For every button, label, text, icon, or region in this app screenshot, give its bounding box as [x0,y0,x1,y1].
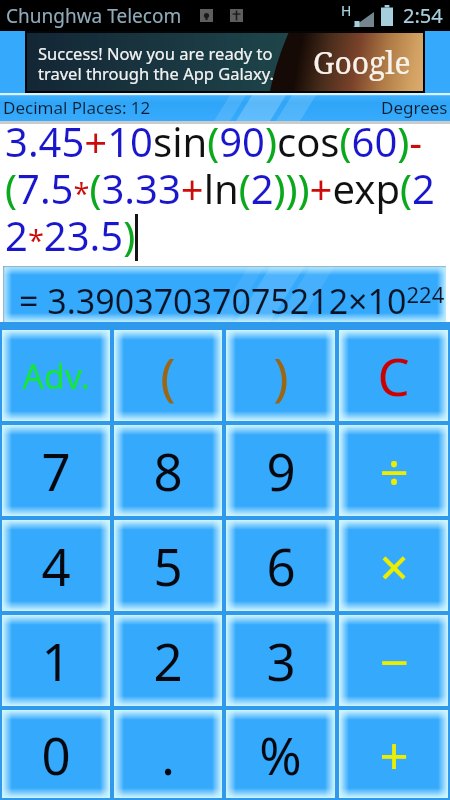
staticText: C [377,341,410,410]
button[interactable]: Adv. [2,330,110,421]
button[interactable]: 1 [2,615,110,706]
staticText: 6 [266,531,296,600]
staticText: Success! Now you are ready to [38,42,273,64]
button[interactable]: 9 [226,425,335,516]
staticText: ÷ [379,436,409,505]
button[interactable]: × [339,520,448,611]
staticText: 3.45+10sin(90)cos(60)- (7.5*(3.33+ln(2))… [5,114,435,263]
staticText: 9 [266,436,296,505]
staticText: 0 [41,720,71,789]
button[interactable]: 2 [114,615,222,706]
staticText: 7 [41,436,71,505]
staticText: ( [160,341,176,410]
staticText: 8 [153,436,183,505]
staticText: H [341,1,352,20]
button[interactable]: 5 [114,520,222,611]
staticText: Adv. [22,353,90,399]
button[interactable]: 6 [226,520,335,611]
button[interactable]: 3 [226,615,335,706]
staticText: + [379,720,409,789]
button[interactable]: − [339,615,448,706]
staticText: Google [313,42,411,83]
button[interactable]: . [114,710,222,798]
staticText: × [379,531,409,600]
button[interactable]: ÷ [339,425,448,516]
staticText: 3 [266,626,296,695]
staticText: % [259,720,302,789]
button[interactable]: 0 [2,710,110,798]
staticText: = 3.39037037075212×10224 [19,278,445,324]
staticText: travel through the App Galaxy. [38,62,274,84]
staticText: . [161,720,175,789]
staticText: 4 [41,531,71,600]
button[interactable]: Decimal Places: 12 [0,93,450,121]
staticText: Degrees [381,96,448,119]
staticText: ) [273,341,289,410]
button[interactable]: + [339,710,448,798]
button[interactable]: 7 [2,425,110,516]
staticText: 5 [153,531,183,600]
button[interactable]: ) [226,330,335,421]
button[interactable]: % [226,710,335,798]
button[interactable]: 4 [2,520,110,611]
staticText: 1 [41,626,71,695]
button[interactable]: 8 [114,425,222,516]
staticText: − [379,626,409,695]
staticText: Chunghwa Telecom [6,3,182,29]
button[interactable]: ( [114,330,222,421]
button[interactable]: C [339,330,448,421]
button[interactable]: Success! Now you are ready to [25,31,425,93]
staticText: 2 [153,626,183,695]
staticText: Decimal Places: 12 [3,96,151,119]
staticText: 2:54 [403,2,443,29]
button[interactable]: = 3.39037037075212×10224 [3,266,446,322]
